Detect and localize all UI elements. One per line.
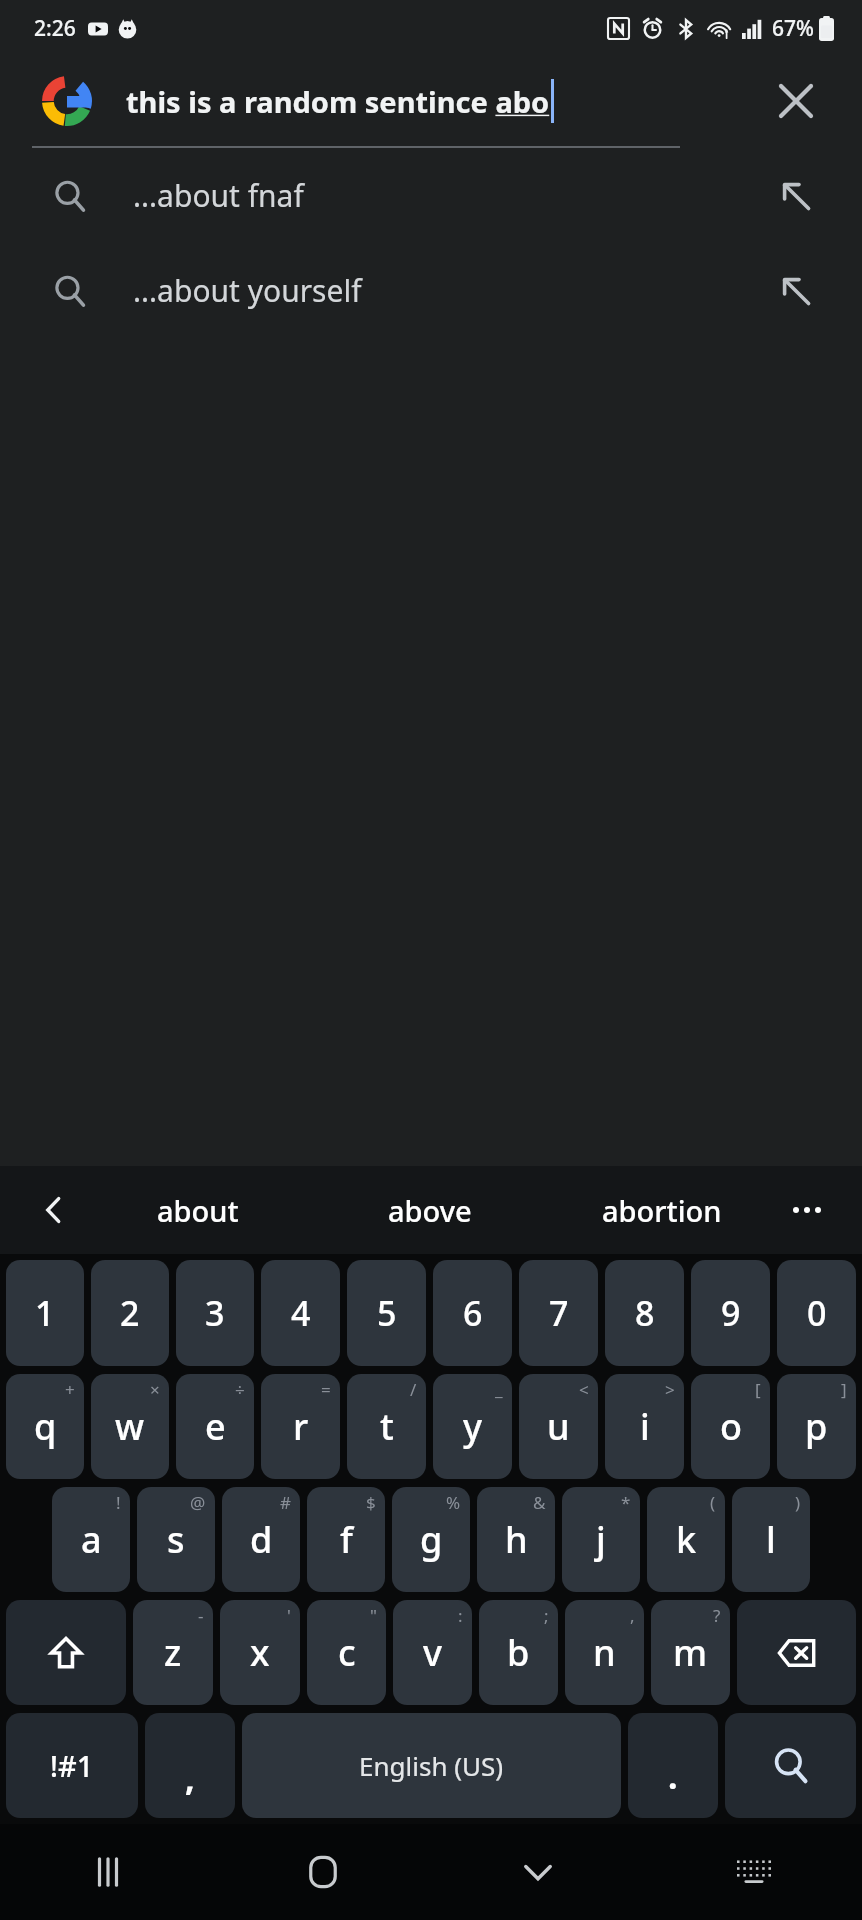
staticText: 6 <box>463 1290 483 1336</box>
button[interactable]: 6 <box>433 1260 512 1366</box>
button[interactable]: f <box>307 1487 385 1592</box>
button[interactable]: b <box>479 1600 558 1705</box>
staticText: ) <box>795 1491 801 1514</box>
staticText: v <box>423 1628 442 1677</box>
staticText: [ <box>755 1378 761 1401</box>
staticText: ? <box>713 1604 721 1627</box>
button[interactable]: u <box>519 1374 598 1479</box>
button[interactable]: ...about yourself <box>0 243 862 338</box>
button[interactable]: w <box>91 1374 169 1479</box>
button[interactable]: n <box>565 1600 644 1705</box>
button[interactable]: Backspace <box>737 1600 856 1705</box>
button[interactable]: o <box>691 1374 770 1479</box>
button[interactable]: p <box>777 1374 856 1479</box>
button[interactable]: 2 <box>91 1260 169 1366</box>
staticText: abortion <box>602 1191 722 1230</box>
staticText: _ <box>495 1378 503 1401</box>
button[interactable]: t <box>347 1374 426 1479</box>
button[interactable]: Clear <box>768 73 824 129</box>
button[interactable]: i <box>605 1374 684 1479</box>
staticText: above <box>388 1191 472 1230</box>
button[interactable]: Search <box>725 1713 856 1818</box>
staticText: ...about yourself <box>133 270 362 311</box>
staticText: a <box>81 1515 102 1564</box>
staticText: about <box>157 1191 239 1230</box>
button[interactable]: Shift <box>6 1600 126 1705</box>
button[interactable]: More suggestions <box>778 1181 836 1239</box>
staticText: this is a random sentince abo <box>126 82 550 121</box>
button[interactable]: k <box>647 1487 725 1592</box>
staticText: > <box>665 1378 675 1401</box>
staticText: i <box>640 1402 650 1451</box>
button[interactable]: m <box>651 1600 730 1705</box>
button[interactable]: !#1 <box>6 1713 138 1818</box>
staticText: : <box>458 1604 463 1627</box>
button[interactable]: h <box>477 1487 555 1592</box>
staticText: t <box>380 1402 394 1451</box>
button[interactable]: c <box>307 1600 386 1705</box>
button[interactable]: Change keyboard <box>722 1840 786 1904</box>
staticText: ; <box>544 1604 549 1627</box>
staticText: p <box>805 1402 828 1451</box>
staticText: < <box>579 1378 589 1401</box>
staticText: * <box>621 1491 631 1514</box>
button[interactable]: . <box>628 1713 718 1818</box>
button[interactable]: r <box>261 1374 340 1479</box>
button[interactable]: e <box>176 1374 254 1479</box>
staticText: q <box>34 1402 57 1451</box>
button[interactable]: above <box>368 1183 492 1238</box>
button[interactable]: 4 <box>261 1260 340 1366</box>
button[interactable]: x <box>220 1600 300 1705</box>
staticText: 5 <box>377 1290 397 1336</box>
staticText: u <box>547 1402 570 1451</box>
button[interactable]: 5 <box>347 1260 426 1366</box>
staticText: , <box>185 1755 195 1801</box>
staticText: 2:26 <box>34 14 76 43</box>
staticText: . <box>668 1753 678 1799</box>
button[interactable]: Recents <box>76 1840 140 1904</box>
button[interactable]: 1 <box>6 1260 84 1366</box>
staticText: - <box>198 1604 204 1627</box>
staticText: d <box>250 1515 273 1564</box>
button[interactable]: s <box>137 1487 215 1592</box>
button[interactable]: English (US) <box>242 1713 621 1818</box>
button[interactable]: Home <box>291 1840 355 1904</box>
button[interactable]: y <box>433 1374 512 1479</box>
button[interactable]: z <box>133 1600 213 1705</box>
button[interactable]: Hide keyboard <box>506 1840 570 1904</box>
button[interactable]: Previous suggestions <box>26 1182 82 1238</box>
staticText: $ <box>366 1491 376 1514</box>
button[interactable]: v <box>393 1600 472 1705</box>
button[interactable]: 8 <box>605 1260 684 1366</box>
button[interactable]: 0 <box>777 1260 856 1366</box>
staticText: 0 <box>807 1290 827 1336</box>
button[interactable]: 9 <box>691 1260 770 1366</box>
button[interactable]: Google <box>40 74 94 128</box>
staticText: l <box>766 1515 776 1564</box>
button[interactable]: g <box>392 1487 470 1592</box>
staticText: 4 <box>291 1290 311 1336</box>
button[interactable]: Insert suggestion <box>774 269 818 313</box>
staticText: e <box>205 1402 226 1451</box>
button[interactable]: l <box>732 1487 810 1592</box>
staticText: k <box>676 1515 697 1564</box>
button[interactable]: q <box>6 1374 84 1479</box>
staticText: f <box>340 1515 353 1564</box>
staticText: 67% <box>772 14 814 43</box>
button[interactable]: about <box>137 1183 259 1238</box>
button[interactable]: j <box>562 1487 640 1592</box>
button[interactable]: Insert suggestion <box>774 174 818 218</box>
button[interactable]: a <box>52 1487 130 1592</box>
button[interactable]: abortion <box>582 1183 742 1238</box>
staticText: 7 <box>549 1290 569 1336</box>
button[interactable]: 7 <box>519 1260 598 1366</box>
button[interactable]: d <box>222 1487 300 1592</box>
button[interactable]: 3 <box>176 1260 254 1366</box>
staticText: @ <box>190 1491 206 1514</box>
staticText: + <box>65 1378 75 1401</box>
button[interactable]: , <box>145 1713 235 1818</box>
staticText: g <box>420 1515 443 1564</box>
button[interactable]: ...about fnaf <box>0 148 862 243</box>
staticText: ] <box>841 1378 847 1401</box>
staticText: y <box>463 1402 483 1451</box>
